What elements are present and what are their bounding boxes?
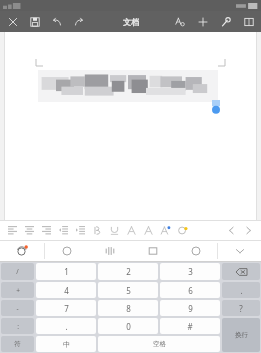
staticText: # xyxy=(187,321,193,332)
button[interactable]: Previous xyxy=(223,221,240,239)
button[interactable]: Undo xyxy=(50,15,63,28)
button[interactable]: Insert xyxy=(196,15,209,28)
staticText: 5 xyxy=(126,285,131,296)
button[interactable]: 符 xyxy=(1,336,34,352)
button[interactable]: Next xyxy=(240,221,257,239)
button[interactable]: 1 xyxy=(36,263,96,280)
staticText: ? xyxy=(239,303,243,314)
button[interactable]: 空格 xyxy=(98,336,220,352)
staticText: 换行 xyxy=(235,331,248,339)
staticText: 8 xyxy=(126,303,131,314)
staticText: 0 xyxy=(126,321,131,332)
button[interactable]: Settings xyxy=(174,240,217,262)
button[interactable]: ? xyxy=(222,300,260,316)
button[interactable]: Clipboard xyxy=(131,240,174,262)
button[interactable]: Font size xyxy=(123,221,140,239)
button[interactable]: 0 xyxy=(98,318,158,334)
staticText: / xyxy=(16,267,19,276)
button[interactable]: Decrease indent xyxy=(55,221,72,239)
button[interactable]: 5 xyxy=(98,282,158,298)
button[interactable]: Emoji xyxy=(45,240,88,262)
button[interactable]: 6 xyxy=(160,282,220,298)
staticText: 3 xyxy=(188,266,193,277)
button[interactable]: # xyxy=(160,318,220,334)
button[interactable]: Bold xyxy=(89,221,106,239)
button[interactable]: Font shrink xyxy=(140,221,157,239)
staticText: . xyxy=(240,285,243,296)
staticText: 9 xyxy=(188,303,193,314)
button[interactable]: 2 xyxy=(98,263,158,280)
button[interactable]: . xyxy=(222,282,260,298)
staticText: 4 xyxy=(64,285,69,296)
button[interactable]: Save xyxy=(28,15,41,28)
button[interactable]: Redo xyxy=(72,15,85,28)
button[interactable]: Close xyxy=(6,15,19,28)
button[interactable]: Tools xyxy=(219,15,232,28)
button[interactable]: 3 xyxy=(160,263,220,280)
staticText: 空格 xyxy=(153,340,166,348)
button[interactable]: 4 xyxy=(36,282,96,298)
button[interactable]: 9 xyxy=(160,300,220,316)
staticText: 7 xyxy=(64,303,69,314)
button[interactable]: Input method xyxy=(0,240,44,262)
staticText: 1 xyxy=(64,266,69,277)
button[interactable]: . xyxy=(36,318,96,334)
button[interactable]: 7 xyxy=(36,300,96,316)
button[interactable]: 换行 xyxy=(222,318,260,352)
button[interactable]: Increase indent xyxy=(72,221,89,239)
staticText: 2 xyxy=(126,266,131,277)
staticText: 6 xyxy=(188,285,193,296)
button[interactable]: / xyxy=(1,263,34,280)
button[interactable]: + xyxy=(1,282,34,298)
button[interactable]: Align right xyxy=(38,221,55,239)
button[interactable]: 8 xyxy=(98,300,158,316)
button[interactable]: Collapse xyxy=(218,240,261,262)
button[interactable]: Align left xyxy=(4,221,21,239)
button[interactable]: Text format xyxy=(173,15,186,28)
button[interactable]: Backspace xyxy=(222,263,260,280)
button[interactable]: Voice xyxy=(88,240,131,262)
button[interactable]: Font color xyxy=(157,221,174,239)
staticText: 符 xyxy=(14,340,21,348)
staticText: 中 xyxy=(63,340,70,349)
button[interactable]: Align center xyxy=(21,221,38,239)
staticText: + xyxy=(16,286,20,295)
staticText: : xyxy=(17,322,19,331)
staticText: . xyxy=(65,321,68,332)
button[interactable]: View mode xyxy=(242,15,255,28)
button[interactable]: Highlight xyxy=(174,221,191,239)
button[interactable]: 中 xyxy=(36,336,96,352)
button[interactable]: Underline xyxy=(106,221,123,239)
staticText: - xyxy=(16,304,19,313)
staticText: 文档 xyxy=(123,17,139,27)
